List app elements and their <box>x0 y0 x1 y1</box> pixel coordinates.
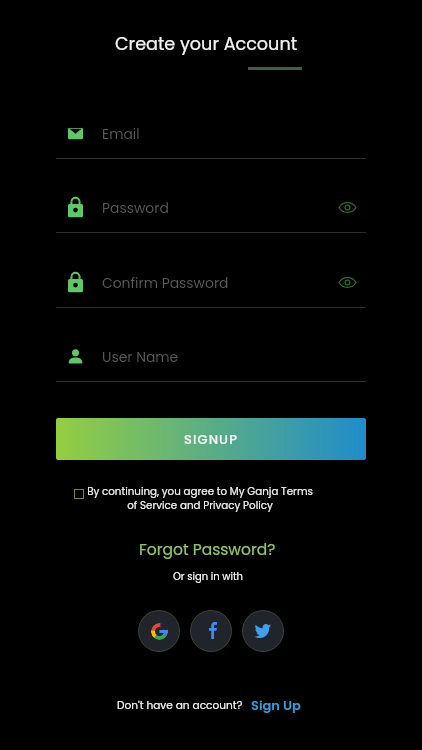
button[interactable]: Sign in with Google <box>138 610 180 652</box>
button[interactable]: Confirm Password <box>56 262 366 302</box>
staticText: By continuing, you agree to My Ganja Ter… <box>87 484 313 498</box>
button[interactable]: Sign in with Twitter <box>242 610 284 652</box>
button[interactable]: SIGNUP <box>56 418 366 460</box>
staticText: SIGNUP <box>184 430 239 448</box>
staticText: of Service and Privacy Policy <box>127 498 273 512</box>
button[interactable]: Show password <box>334 269 360 295</box>
staticText: Email <box>102 124 140 143</box>
button[interactable]: Sign in with Facebook <box>190 610 232 652</box>
staticText: User Name <box>102 347 179 366</box>
button[interactable]: Password <box>56 187 366 227</box>
button[interactable]: User Name <box>56 336 366 376</box>
staticText: Don't have an account? <box>117 698 243 713</box>
button[interactable]: Show password <box>334 194 360 220</box>
button[interactable]: Agree to terms and conditions <box>74 489 84 499</box>
staticText: Or sign in with <box>173 569 243 583</box>
staticText: Confirm Password <box>102 273 229 292</box>
staticText: Password <box>102 198 169 217</box>
button[interactable]: Sign Up <box>251 696 301 714</box>
button[interactable]: Forgot Password? <box>139 539 276 561</box>
button[interactable]: Email <box>56 113 366 153</box>
staticText: Create your Account <box>115 32 298 57</box>
